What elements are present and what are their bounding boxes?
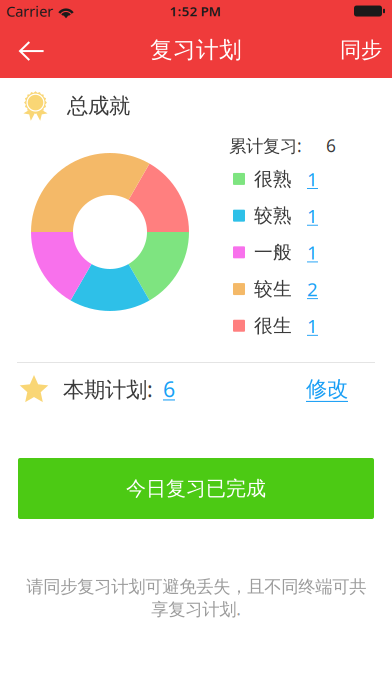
staticText: 复习计划 — [150, 36, 242, 64]
button[interactable]: 1 — [307, 239, 327, 265]
staticText: 修改 — [306, 376, 348, 402]
button[interactable]: 同步 — [326, 25, 392, 75]
button[interactable]: 1 — [307, 313, 327, 339]
staticText: 较生 — [254, 278, 292, 300]
staticText: 1 — [307, 313, 318, 338]
button[interactable]: 2 — [307, 276, 327, 302]
button[interactable]: 1 — [307, 166, 327, 192]
staticText: 1 — [307, 240, 318, 265]
staticText: 6 — [326, 134, 336, 157]
staticText: 今日复习已完成 — [126, 476, 266, 501]
staticText: 很生 — [254, 314, 292, 337]
staticText: Carrier — [6, 1, 53, 21]
button[interactable]: 今日复习已完成 — [18, 458, 374, 519]
staticText: 1:52 PM — [169, 2, 220, 20]
staticText: 请同步复习计划可避免丢失，且不同终端可共享复习计划. — [26, 576, 366, 620]
staticText: 6 — [163, 375, 175, 403]
staticText: 很熟 — [254, 167, 292, 190]
staticText: 本期计划: — [63, 375, 153, 403]
staticText: 总成就 — [67, 93, 130, 119]
staticText: 2 — [307, 277, 318, 301]
staticText: 1 — [307, 203, 318, 228]
staticText: 累计复习: — [229, 134, 302, 157]
button[interactable]: 修改 — [296, 373, 358, 405]
staticText: 同步 — [340, 37, 382, 63]
staticText: 一般 — [254, 241, 292, 264]
staticText: 1 — [307, 167, 318, 191]
button[interactable]: 1 — [307, 203, 327, 229]
staticText: 较熟 — [254, 204, 292, 227]
button[interactable]: 6 — [153, 374, 181, 404]
button[interactable]: 返回 — [0, 23, 57, 77]
